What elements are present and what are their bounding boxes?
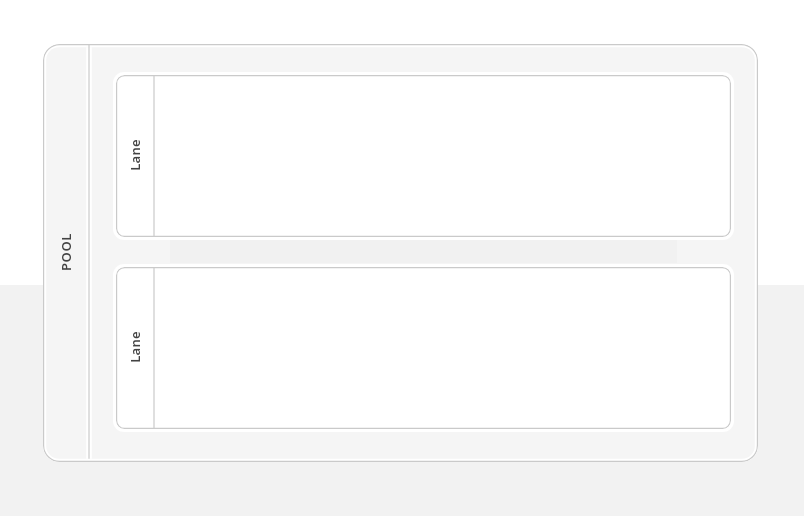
button[interactable]: Lane <box>116 75 731 237</box>
staticText: POOL <box>57 233 75 271</box>
button[interactable]: POOL <box>43 44 758 462</box>
staticText: Lane <box>126 139 144 171</box>
button[interactable]: Lane <box>116 267 731 429</box>
staticText: Lane <box>126 331 144 363</box>
